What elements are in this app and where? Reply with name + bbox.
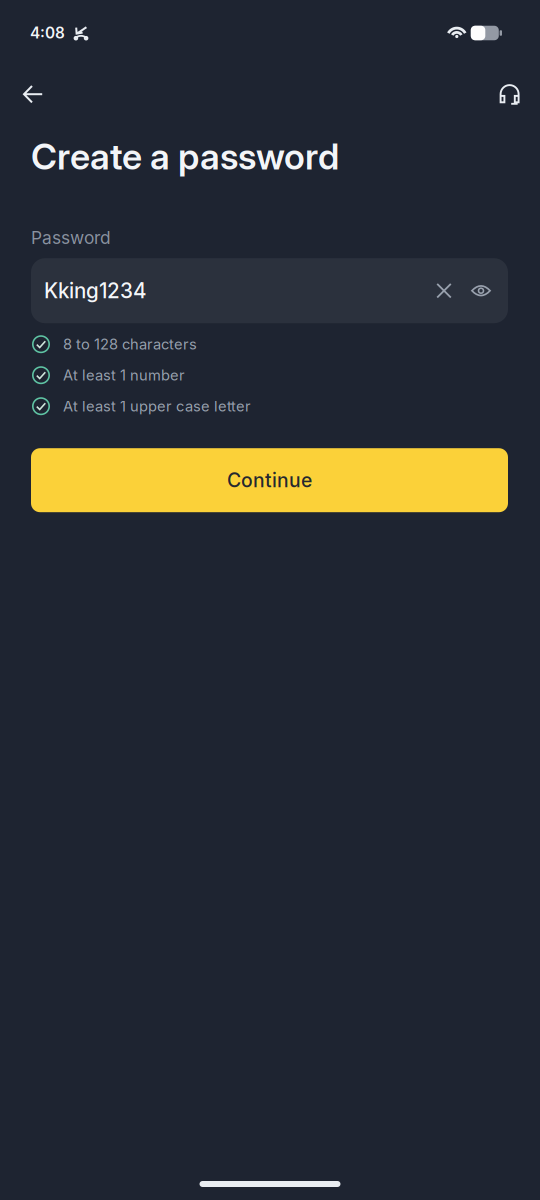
button[interactable]: Clear password bbox=[429, 274, 459, 308]
button[interactable]: Back bbox=[11, 72, 55, 116]
staticText: 4:08 bbox=[30, 24, 65, 42]
staticText: At least 1 number bbox=[63, 366, 185, 384]
staticText: Kking1234 bbox=[44, 278, 147, 303]
staticText: 8 to 128 characters bbox=[63, 335, 197, 353]
staticText: Continue bbox=[227, 468, 312, 492]
staticText: Create a password bbox=[31, 135, 339, 178]
button[interactable]: Show password bbox=[466, 274, 496, 308]
staticText: At least 1 upper case letter bbox=[63, 397, 251, 415]
staticText: Password bbox=[31, 227, 111, 248]
button[interactable]: Continue bbox=[31, 448, 508, 512]
button[interactable]: Contact support bbox=[488, 72, 532, 116]
